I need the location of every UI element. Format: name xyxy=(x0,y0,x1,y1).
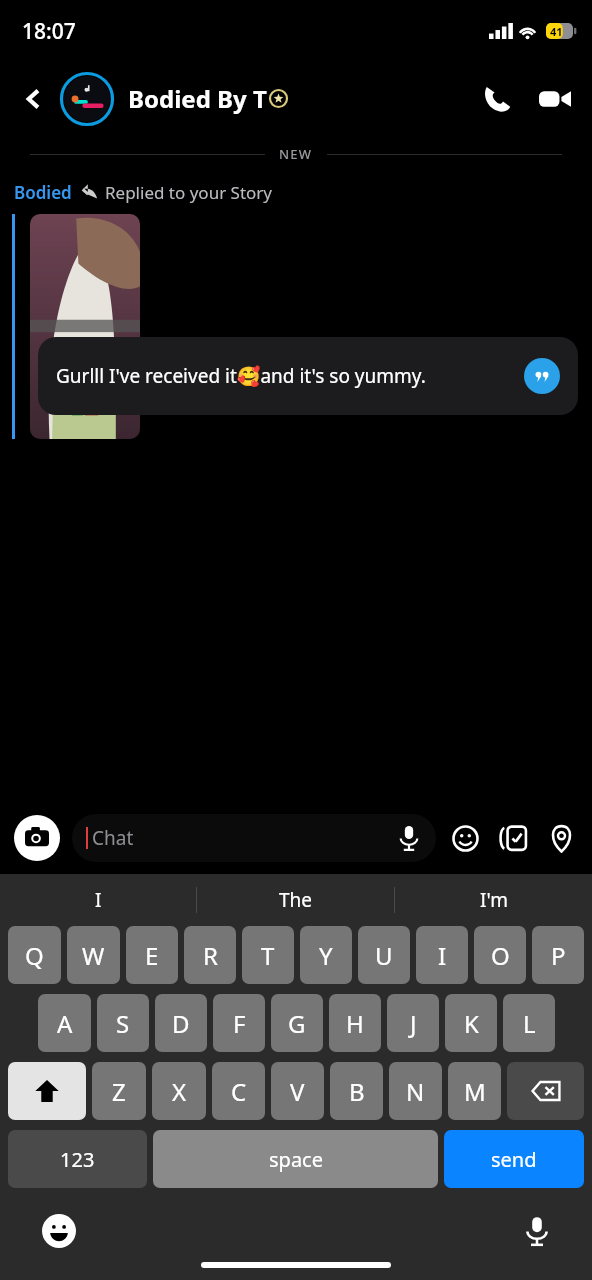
button[interactable]: K xyxy=(445,994,497,1052)
button[interactable]: O xyxy=(474,926,526,984)
button[interactable]: 123 xyxy=(8,1130,147,1188)
staticText: O xyxy=(491,939,510,972)
button[interactable]: J xyxy=(387,994,439,1052)
staticText: G xyxy=(288,1007,306,1040)
button[interactable]: H xyxy=(329,994,381,1052)
staticText: N xyxy=(406,1075,425,1108)
button[interactable]: S xyxy=(97,994,149,1052)
button[interactable]: W xyxy=(67,926,120,984)
staticText: H xyxy=(346,1007,364,1040)
staticText: R xyxy=(203,939,218,972)
staticText: W xyxy=(82,939,105,972)
button[interactable]: Back xyxy=(14,79,54,119)
staticText: L xyxy=(523,1007,536,1040)
button[interactable]: Shift xyxy=(8,1062,86,1120)
button[interactable]: G xyxy=(271,994,323,1052)
button[interactable]: Q xyxy=(8,926,61,984)
button[interactable]: Backspace xyxy=(507,1062,584,1120)
staticText: Z xyxy=(112,1075,126,1108)
button[interactable]: R xyxy=(184,926,236,984)
staticText: F xyxy=(233,1007,246,1040)
staticText: Q xyxy=(25,939,44,972)
staticText: I'm xyxy=(480,887,508,913)
button[interactable] xyxy=(30,214,140,439)
button[interactable]: Audio call xyxy=(474,76,520,122)
staticText: 18:07 xyxy=(22,17,76,46)
button[interactable]: Z xyxy=(92,1062,146,1120)
button[interactable]: Gurlll I've received it🥰and it's so yumm… xyxy=(38,337,578,415)
button[interactable]: The xyxy=(197,874,394,926)
button[interactable]: Chat xyxy=(72,814,436,862)
button[interactable]: Emoji xyxy=(38,1210,80,1252)
staticText: K xyxy=(464,1007,479,1040)
button[interactable]: Gallery xyxy=(496,821,530,855)
staticText: J xyxy=(410,1007,417,1040)
button[interactable]: Stickers xyxy=(448,821,482,855)
staticText: T xyxy=(261,939,275,972)
staticText: P xyxy=(551,939,566,972)
button[interactable]: T xyxy=(242,926,294,984)
staticText: Y xyxy=(319,939,333,972)
staticText: C xyxy=(231,1075,247,1108)
button[interactable]: Bodied By T xyxy=(128,82,474,115)
button[interactable]: A xyxy=(38,994,91,1052)
button[interactable]: I'm xyxy=(395,874,592,926)
staticText: M xyxy=(464,1075,486,1108)
button[interactable]: C xyxy=(212,1062,265,1120)
button[interactable]: I xyxy=(0,874,196,926)
button[interactable]: F xyxy=(213,994,265,1052)
button[interactable]: B xyxy=(330,1062,383,1120)
staticText: A xyxy=(57,1007,73,1040)
button[interactable]: E xyxy=(126,926,178,984)
staticText: 123 xyxy=(60,1146,95,1173)
button[interactable]: N xyxy=(389,1062,442,1120)
staticText: Gurlll I've received it🥰and it's so yumm… xyxy=(56,363,524,389)
staticText: X xyxy=(172,1075,187,1108)
staticText: Bodied By T xyxy=(128,82,267,115)
button[interactable]: X xyxy=(152,1062,206,1120)
button[interactable]: Location xyxy=(544,821,578,855)
staticText: Bodied xyxy=(14,181,72,204)
staticText: U xyxy=(375,939,393,972)
button[interactable]: send xyxy=(444,1130,584,1188)
button[interactable]: U xyxy=(358,926,410,984)
staticText: NEW xyxy=(279,145,313,163)
staticText: space xyxy=(269,1146,323,1173)
button[interactable]: L xyxy=(503,994,555,1052)
button[interactable]: Y xyxy=(300,926,352,984)
staticText: V xyxy=(290,1075,305,1108)
staticText: E xyxy=(145,939,159,972)
staticText: D xyxy=(172,1007,190,1040)
staticText: Replied to your Story xyxy=(105,181,273,204)
staticText: The xyxy=(279,887,313,913)
staticText: B xyxy=(349,1075,365,1108)
button[interactable]: I xyxy=(416,926,468,984)
staticText: Chat xyxy=(92,825,396,851)
button[interactable]: Camera xyxy=(14,815,60,861)
staticText: I xyxy=(95,887,102,913)
button[interactable]: P xyxy=(532,926,584,984)
button[interactable]: Voice input xyxy=(516,1210,558,1252)
button[interactable]: M xyxy=(448,1062,501,1120)
staticText: I xyxy=(438,939,447,972)
button[interactable]: space xyxy=(153,1130,438,1188)
button[interactable]: D xyxy=(155,994,207,1052)
staticText: 41 xyxy=(550,24,563,39)
staticText: send xyxy=(491,1146,537,1173)
button[interactable]: Video call xyxy=(532,76,578,122)
staticText: S xyxy=(116,1007,130,1040)
button[interactable]: V xyxy=(271,1062,324,1120)
